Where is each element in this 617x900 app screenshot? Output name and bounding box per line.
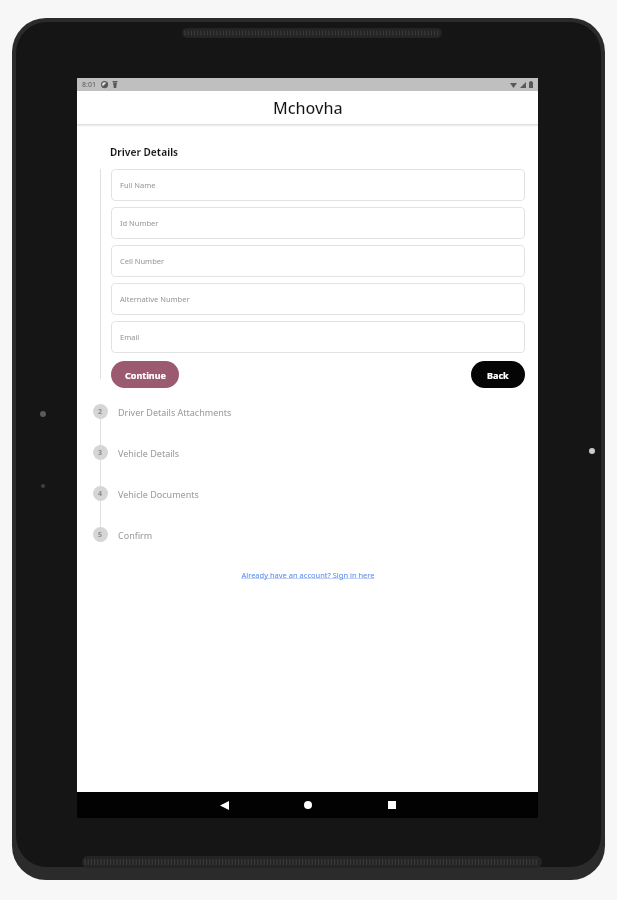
button[interactable]: 4 (77, 486, 538, 501)
staticText: Confirm (118, 529, 153, 541)
button[interactable]: 5 (77, 527, 538, 542)
staticText: 8:01 (82, 80, 96, 90)
staticText: Mchovha (273, 97, 343, 119)
button[interactable]: Already have an account? Sign in here (77, 570, 538, 580)
staticText: 3 (98, 448, 103, 458)
staticText: Vehicle Documents (118, 488, 199, 500)
staticText: Back (487, 369, 509, 381)
button[interactable]: Alternative Number (111, 283, 525, 315)
staticText: 5 (98, 530, 103, 540)
staticText: Continue (125, 369, 166, 381)
button[interactable]: Continue (111, 361, 179, 388)
staticText: Already have an account? Sign in here (241, 570, 375, 580)
staticText: Full Name (120, 180, 156, 190)
button[interactable]: Id Number (111, 207, 525, 239)
staticText: Driver Details (110, 145, 179, 159)
staticText: 2 (98, 407, 103, 417)
staticText: Driver Details Attachments (118, 406, 232, 418)
button[interactable]: 2 (77, 404, 538, 419)
button[interactable]: Cell Number (111, 245, 525, 277)
staticText: Alternative Number (120, 294, 190, 304)
button[interactable]: Home (286, 792, 330, 818)
button[interactable]: Recent apps (370, 792, 414, 818)
staticText: 4 (98, 489, 103, 499)
button[interactable]: Back (202, 792, 246, 818)
button[interactable]: Full Name (111, 169, 525, 201)
button[interactable]: Back (471, 361, 525, 388)
button[interactable]: 3 (77, 445, 538, 460)
button[interactable]: Email (111, 321, 525, 353)
staticText: Vehicle Details (118, 447, 180, 459)
staticText: Email (120, 332, 140, 342)
staticText: Cell Number (120, 256, 165, 266)
staticText: Id Number (120, 218, 159, 228)
